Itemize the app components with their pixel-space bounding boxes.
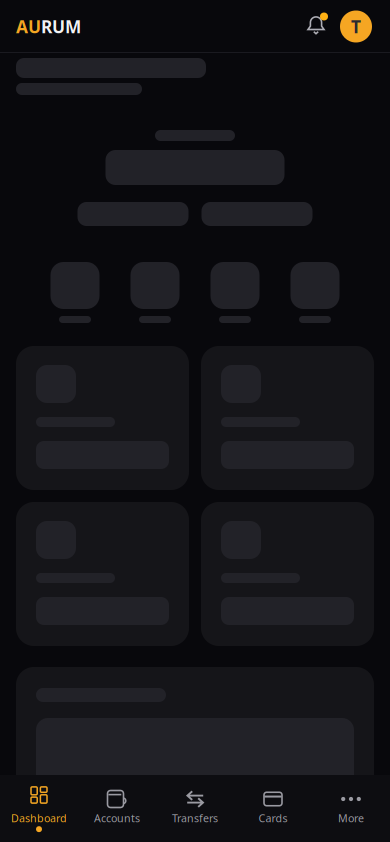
button[interactable]: Cards — [234, 788, 312, 832]
staticText: Dashboard — [11, 811, 67, 825]
button[interactable] — [210, 262, 259, 323]
staticText: Cards — [258, 811, 287, 825]
staticText: More — [338, 811, 364, 825]
button[interactable] — [290, 262, 339, 323]
button[interactable] — [130, 262, 179, 323]
staticText: RUM — [41, 15, 81, 38]
button[interactable]: Transfers — [156, 788, 234, 832]
staticText: Accounts — [94, 811, 140, 825]
button[interactable]: Accounts — [78, 788, 156, 832]
button[interactable] — [50, 262, 99, 323]
button[interactable]: More — [312, 788, 390, 832]
button[interactable]: Notifications — [302, 15, 322, 37]
staticText: Transfers — [172, 811, 218, 825]
staticText: AU — [16, 15, 41, 38]
button[interactable]: Profile — [340, 10, 372, 42]
staticText: T — [351, 15, 361, 38]
button[interactable]: Dashboard — [0, 788, 78, 832]
